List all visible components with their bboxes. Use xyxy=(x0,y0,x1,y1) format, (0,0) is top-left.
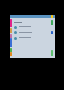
button[interactable]: Avatar xyxy=(14,37,17,40)
button[interactable]: Snoozed xyxy=(10,34,12,38)
button[interactable]: Labels xyxy=(10,52,12,56)
button[interactable]: Drafts xyxy=(10,48,12,52)
button[interactable]: Keep xyxy=(51,15,53,18)
button[interactable]: Avatar xyxy=(14,26,17,29)
button[interactable]: Contacts xyxy=(51,50,53,56)
button[interactable]: Avatar xyxy=(14,31,17,34)
button[interactable]: Starred xyxy=(10,28,12,33)
button[interactable]: Tasks xyxy=(51,31,53,34)
button[interactable]: Sent xyxy=(10,38,12,47)
button[interactable]: Compose xyxy=(10,19,12,27)
button[interactable]: Calendar xyxy=(51,20,53,25)
